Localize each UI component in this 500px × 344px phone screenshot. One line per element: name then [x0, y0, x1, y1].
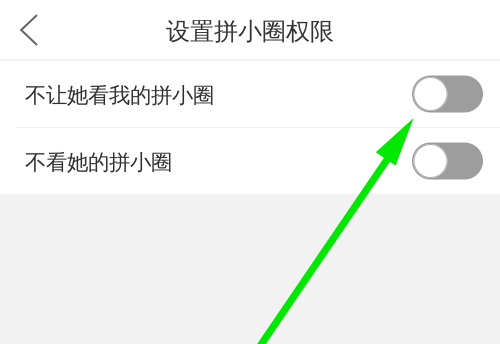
staticText: 不看她的拼小圈 [25, 149, 172, 176]
button[interactable]: 不看她的拼小圈 [0, 128, 500, 194]
staticText: 不让她看我的拼小圈 [25, 82, 214, 109]
button[interactable]: 不让她看我的拼小圈 [0, 61, 500, 127]
staticText: 设置拼小圈权限 [166, 17, 334, 46]
button[interactable]: Back [0, 1, 56, 59]
